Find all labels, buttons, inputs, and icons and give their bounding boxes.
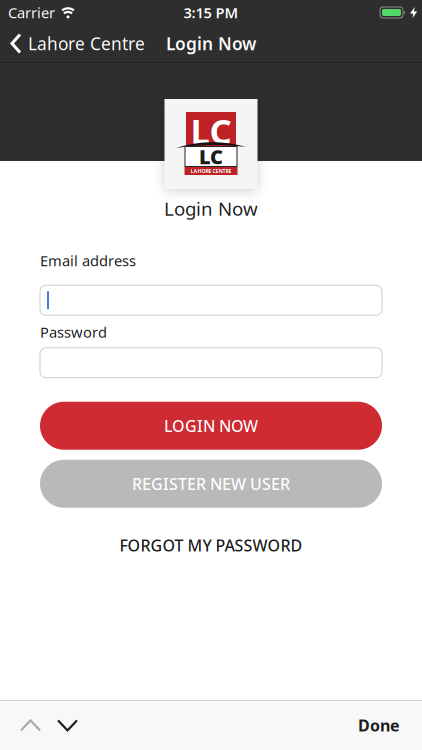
staticText: Login Now [166,32,256,55]
staticText: LAHORE CENTRE [190,167,231,175]
staticText: LC [199,143,223,170]
staticText: Password [40,322,107,342]
staticText: REGISTER NEW USER [132,473,290,494]
button[interactable]: FORGOT MY PASSWORD [119,535,302,556]
button[interactable]: Done [358,715,422,736]
staticText: 3:15 PM [183,3,238,22]
staticText: LC [190,107,231,153]
button[interactable]: Lahore Centre [0,32,145,55]
staticText: LOGIN NOW [164,415,258,436]
button[interactable]: REGISTER NEW USER [40,460,382,508]
staticText: Done [358,715,400,736]
button[interactable]: Previous field [0,718,41,732]
staticText: Carrier [8,3,55,22]
staticText: Login Now [164,196,258,221]
button[interactable]: LOGIN NOW [40,402,382,450]
staticText: Email address [40,251,136,270]
staticText: FORGOT MY PASSWORD [119,535,302,556]
staticText: Lahore Centre [28,32,145,55]
button[interactable]: Next field [57,718,78,732]
